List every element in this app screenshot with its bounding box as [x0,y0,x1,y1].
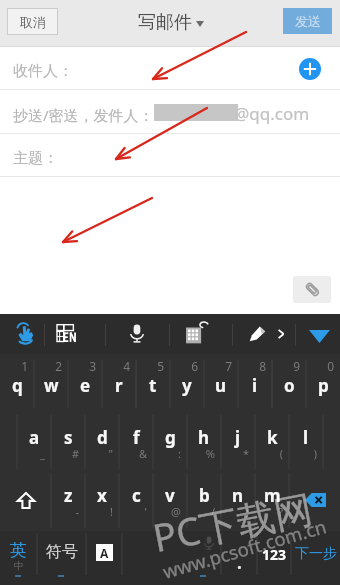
button[interactable]: Add recipient [299,58,321,80]
staticText: 主题： [13,149,58,168]
staticText: 7 [225,358,232,374]
button[interactable]: 1 [0,354,34,415]
staticText: j [235,426,241,449]
staticText: 9 [293,358,300,374]
button[interactable]: k [255,415,289,473]
button[interactable]: Stroke input [249,324,267,342]
button[interactable]: c [119,473,153,531]
staticText: d [97,426,108,449]
staticText: h [198,426,210,449]
button[interactable]: Attach file [293,276,331,303]
staticText: : [178,446,181,461]
staticText: u [215,374,227,397]
staticText: # [71,446,79,461]
staticText: 2 [55,358,62,374]
button[interactable]: Input method settings [86,531,122,585]
button[interactable]: 9 [272,354,306,415]
staticText: " [108,446,113,461]
staticText: 8 [259,358,266,374]
staticText: ; [246,504,249,519]
button[interactable]: 7 [204,354,238,415]
button[interactable]: g [153,415,187,473]
button[interactable]: 123 [257,531,291,585]
staticText: f [133,426,140,449]
button[interactable]: 收件人： [0,47,340,90]
button[interactable]: l [289,415,323,473]
button[interactable]: 5 [136,354,170,415]
staticText: a [29,426,40,449]
staticText: m [264,484,281,507]
button[interactable]: h [187,415,221,473]
button[interactable]: 主题： [0,134,340,177]
button[interactable]: More options [275,325,287,343]
button[interactable]: 下一步 [291,531,340,585]
staticText: q [12,374,23,397]
button[interactable]: Voice input [130,324,144,343]
button[interactable]: 4 [102,354,136,415]
button[interactable]: m [255,473,289,531]
staticText: 0 [327,358,334,374]
staticText: b [199,484,210,507]
staticText: i [252,374,258,397]
button[interactable]: 6 [170,354,204,415]
staticText: w [44,374,59,397]
staticText: 中 [14,559,24,572]
button[interactable]: 取消 [7,8,58,35]
button[interactable]: Shift [0,473,51,531]
button[interactable]: f [119,415,153,473]
button[interactable]: Switch keyboard to English [56,323,84,344]
staticText: 写邮件 [138,11,192,34]
staticText: A [100,545,109,561]
button[interactable]: a [17,415,51,473]
button[interactable]: Hide keyboard [309,330,330,343]
staticText: 取消 [20,14,46,30]
staticText: 英 [10,540,27,561]
staticText: 抄送/密送，发件人： [13,105,154,125]
staticText: o [284,374,295,397]
staticText: ) [313,446,317,461]
staticText: ? [278,504,283,519]
button[interactable]: j [221,415,255,473]
staticText: * [242,446,249,461]
staticText: c [132,484,141,507]
staticText: g [165,426,176,449]
staticText: 收件人： [13,62,73,81]
button[interactable]: 发送 [283,8,332,34]
staticText: 下一步 [295,545,337,563]
button[interactable]: 0 [306,354,340,415]
staticText: 123 [262,545,287,564]
button[interactable]: d [85,415,119,473]
button[interactable]: n [221,473,255,531]
button[interactable]: 英 [0,531,37,585]
staticText: 5 [157,358,164,374]
button[interactable]: Backspace [289,473,340,531]
staticText: ' [144,504,147,519]
staticText: l [303,426,309,449]
staticText: www.pcsoft.com.cn [160,513,329,584]
staticText: ! [110,504,113,519]
button[interactable]: 8 [238,354,272,415]
staticText: 发送 [295,13,321,29]
button[interactable]: . [221,531,257,585]
button[interactable]: Space [122,531,221,585]
button[interactable]: x [85,473,119,531]
button[interactable]: 符号 [37,531,86,585]
button[interactable]: v [153,473,187,531]
button[interactable]: 3 [68,354,102,415]
button[interactable]: 2 [34,354,68,415]
staticText: t [149,374,157,397]
button[interactable]: s [51,415,85,473]
staticText: ( [279,446,283,461]
staticText: v [165,484,175,507]
button[interactable]: b [187,473,221,531]
staticText: . [237,551,242,574]
button[interactable]: 抄送/密送，发件人： [0,90,340,134]
staticText: 1 [21,358,28,374]
button[interactable]: 写邮件 [138,11,204,34]
staticText: 4 [123,358,130,374]
button[interactable]: z [51,473,85,531]
button[interactable]: Handwriting input [14,322,36,344]
button[interactable]: Numeric keypad [186,322,210,344]
staticText: / [210,504,215,519]
staticText: z [64,484,73,507]
